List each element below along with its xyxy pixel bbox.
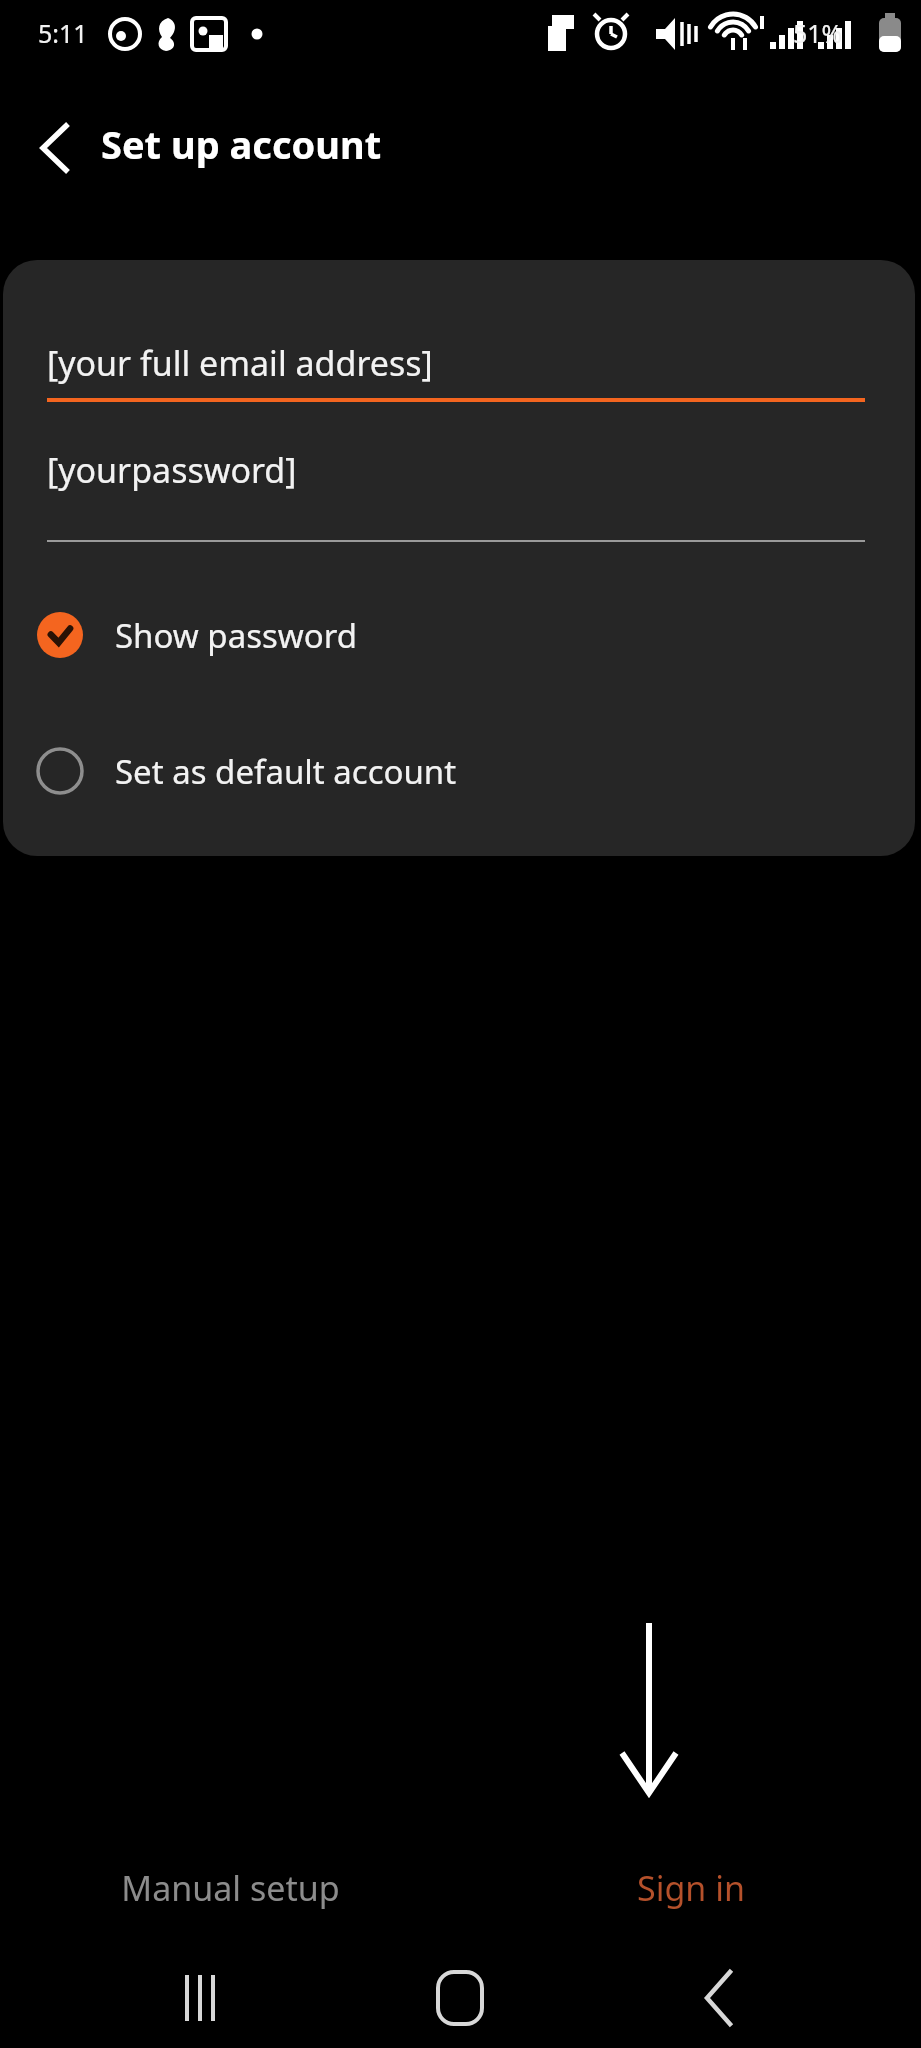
button[interactable]: Recent apps [150,1958,250,2038]
button[interactable]: Back [668,1958,768,2038]
button[interactable]: Back [22,116,86,180]
staticText: 51% [793,16,843,50]
button[interactable]: Set as default account [33,734,573,808]
staticText: Manual setup [121,1865,340,1911]
button[interactable]: Manual setup [0,1838,460,1938]
staticText: Show password [115,613,357,658]
staticText: [yourpassword] [47,447,297,493]
staticText: Sign in [637,1865,745,1911]
staticText: Set up account [101,118,382,170]
staticText: Set as default account [115,749,457,794]
button[interactable]: Sign in [460,1838,921,1938]
button[interactable]: Home [410,1958,510,2038]
staticText: 5:11 [38,16,88,50]
staticText: [your full email address] [47,340,433,386]
button[interactable]: Show password [33,598,533,672]
